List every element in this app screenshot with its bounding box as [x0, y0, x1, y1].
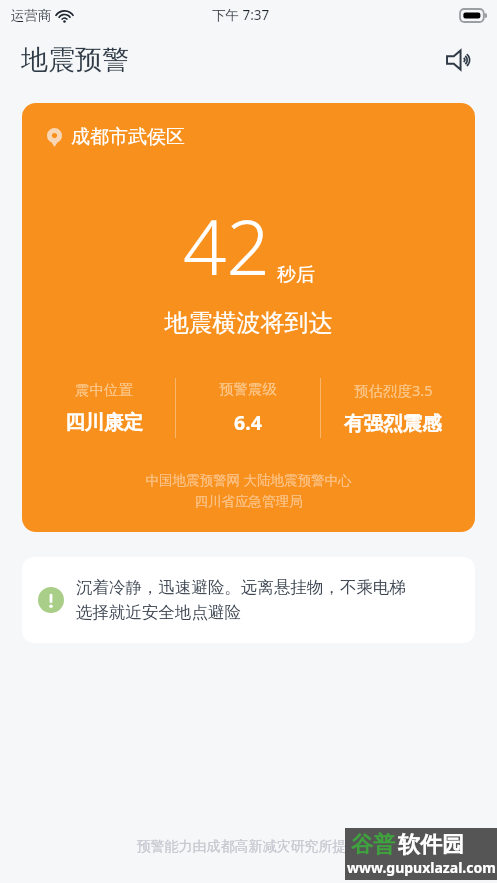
staticText: 选择就近安全地点避险	[76, 602, 241, 623]
staticText: 预警震级	[219, 380, 277, 398]
staticText: 预估烈度3.5	[354, 380, 433, 400]
staticText: 软件园	[398, 831, 464, 859]
button[interactable]: 成都市武侯区	[22, 103, 475, 532]
staticText: 6.4	[234, 409, 262, 436]
staticText: 下午 7:37	[212, 6, 270, 24]
staticText: 42	[183, 194, 270, 298]
staticText: 有强烈震感	[344, 411, 442, 436]
staticText: 沉着冷静，迅速避险。远离悬挂物，不乘电梯	[76, 577, 406, 598]
button[interactable]: Sound	[439, 40, 479, 80]
staticText: 地震预警	[21, 43, 129, 77]
staticText: 成都市武侯区	[71, 125, 185, 149]
staticText: 秒后	[277, 263, 315, 287]
staticText: 预警能力由成都高新减灾研究所提供	[0, 838, 497, 856]
staticText: 中国地震预警网 大陆地震预警中心	[22, 471, 475, 489]
button[interactable]: 沉着冷静，迅速避险。远离悬挂物，不乘电梯	[22, 557, 475, 643]
staticText: 地震横波将到达	[22, 308, 475, 338]
staticText: www.gupuxlazal.com	[347, 858, 496, 877]
staticText: 运营商	[11, 7, 52, 24]
staticText: 谷普	[351, 831, 395, 859]
staticText: 四川康定	[65, 410, 143, 435]
staticText: 四川省应急管理局	[22, 493, 475, 510]
staticText: 震中位置	[75, 381, 133, 399]
